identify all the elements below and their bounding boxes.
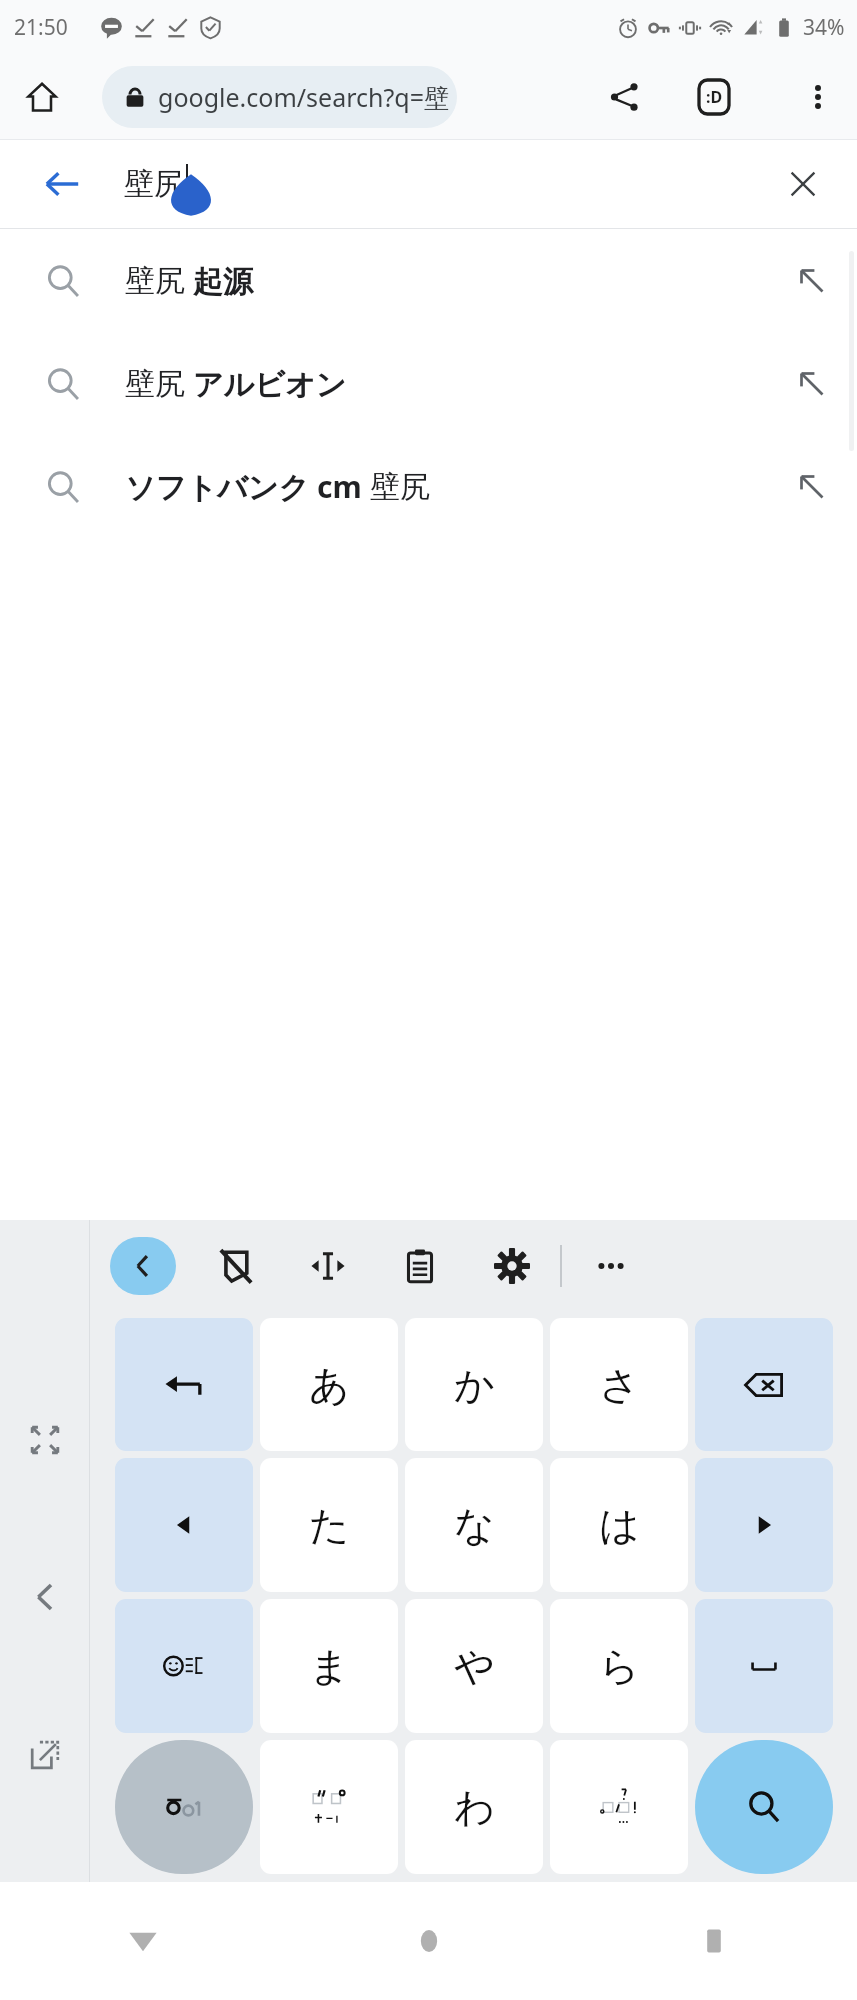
staticText: わ (454, 1782, 495, 1832)
button[interactable]: Back (26, 148, 98, 220)
button[interactable]: Home (389, 1901, 469, 1981)
button[interactable]: Handwriting off (204, 1234, 268, 1298)
staticText: さ (599, 1360, 640, 1410)
button[interactable]: さ (550, 1318, 688, 1451)
button[interactable]: Settings (480, 1234, 544, 1298)
button[interactable]: ソフトバンク cm (0, 435, 857, 538)
button[interactable]: 壁尻 (0, 229, 857, 332)
button[interactable]: Back (103, 1901, 183, 1981)
staticText: た (309, 1500, 350, 1550)
staticText: は (599, 1500, 640, 1550)
staticText: や (454, 1641, 495, 1691)
staticText: ま (309, 1641, 350, 1691)
staticText: 壁尻 (124, 165, 184, 203)
staticText: か (454, 1360, 495, 1410)
button[interactable]: Collapse toolbar (110, 1237, 176, 1295)
button[interactable]: わ (405, 1740, 543, 1874)
button[interactable]: Key (115, 1318, 253, 1451)
staticText: アルビオン (185, 363, 347, 404)
staticText: 34% (803, 13, 845, 42)
staticText: 壁尻 (370, 468, 430, 506)
button[interactable]: Tabs (683, 66, 745, 128)
button[interactable]: た (260, 1458, 398, 1592)
button[interactable]: Share (595, 67, 655, 127)
other: Insert suggestion (767, 435, 857, 538)
button[interactable]: か (405, 1318, 543, 1451)
button[interactable]: Key (115, 1740, 253, 1874)
staticText: 壁尻 (125, 262, 185, 300)
button[interactable]: Key (695, 1458, 833, 1592)
staticText: な (454, 1500, 495, 1550)
button[interactable]: は (550, 1458, 688, 1592)
button[interactable]: あ (260, 1318, 398, 1451)
button[interactable]: Key (115, 1599, 253, 1733)
other: Insert suggestion (767, 332, 857, 435)
other: Insert suggestion (767, 229, 857, 332)
staticText: あ (309, 1360, 350, 1410)
button[interactable]: Home (14, 69, 70, 125)
staticText: 壁尻 (125, 365, 185, 403)
staticText: 21:50 (14, 13, 68, 42)
button[interactable]: Recents (674, 1901, 754, 1981)
button[interactable]: Key (695, 1740, 833, 1874)
button[interactable]: 壁尻 (0, 332, 857, 435)
staticText: 起源 (185, 260, 253, 301)
button[interactable]: Floating keyboard (15, 1725, 75, 1785)
staticText: google.com/search?q=壁 (158, 80, 449, 114)
button[interactable]: Clear (771, 152, 835, 216)
button[interactable]: google.com/search?q=壁 (102, 66, 457, 128)
button[interactable]: Back (15, 1567, 75, 1627)
button[interactable]: Resize keyboard (15, 1410, 75, 1470)
staticText: ソフトバンク cm (125, 466, 370, 507)
button[interactable]: な (405, 1458, 543, 1592)
button[interactable]: Key (695, 1318, 833, 1451)
button[interactable]: More options (789, 68, 847, 126)
button[interactable]: ま (260, 1599, 398, 1733)
button[interactable]: Cursor move (296, 1234, 360, 1298)
button[interactable]: Key (115, 1458, 253, 1592)
staticText: ら (599, 1641, 640, 1691)
staticText: :D (706, 86, 723, 108)
button[interactable]: More (578, 1233, 644, 1299)
button[interactable]: Key (550, 1740, 688, 1874)
button[interactable]: Clipboard (388, 1234, 452, 1298)
button[interactable]: ら (550, 1599, 688, 1733)
button[interactable]: や (405, 1599, 543, 1733)
button[interactable]: Key (260, 1740, 398, 1874)
button[interactable]: Key (695, 1599, 833, 1733)
